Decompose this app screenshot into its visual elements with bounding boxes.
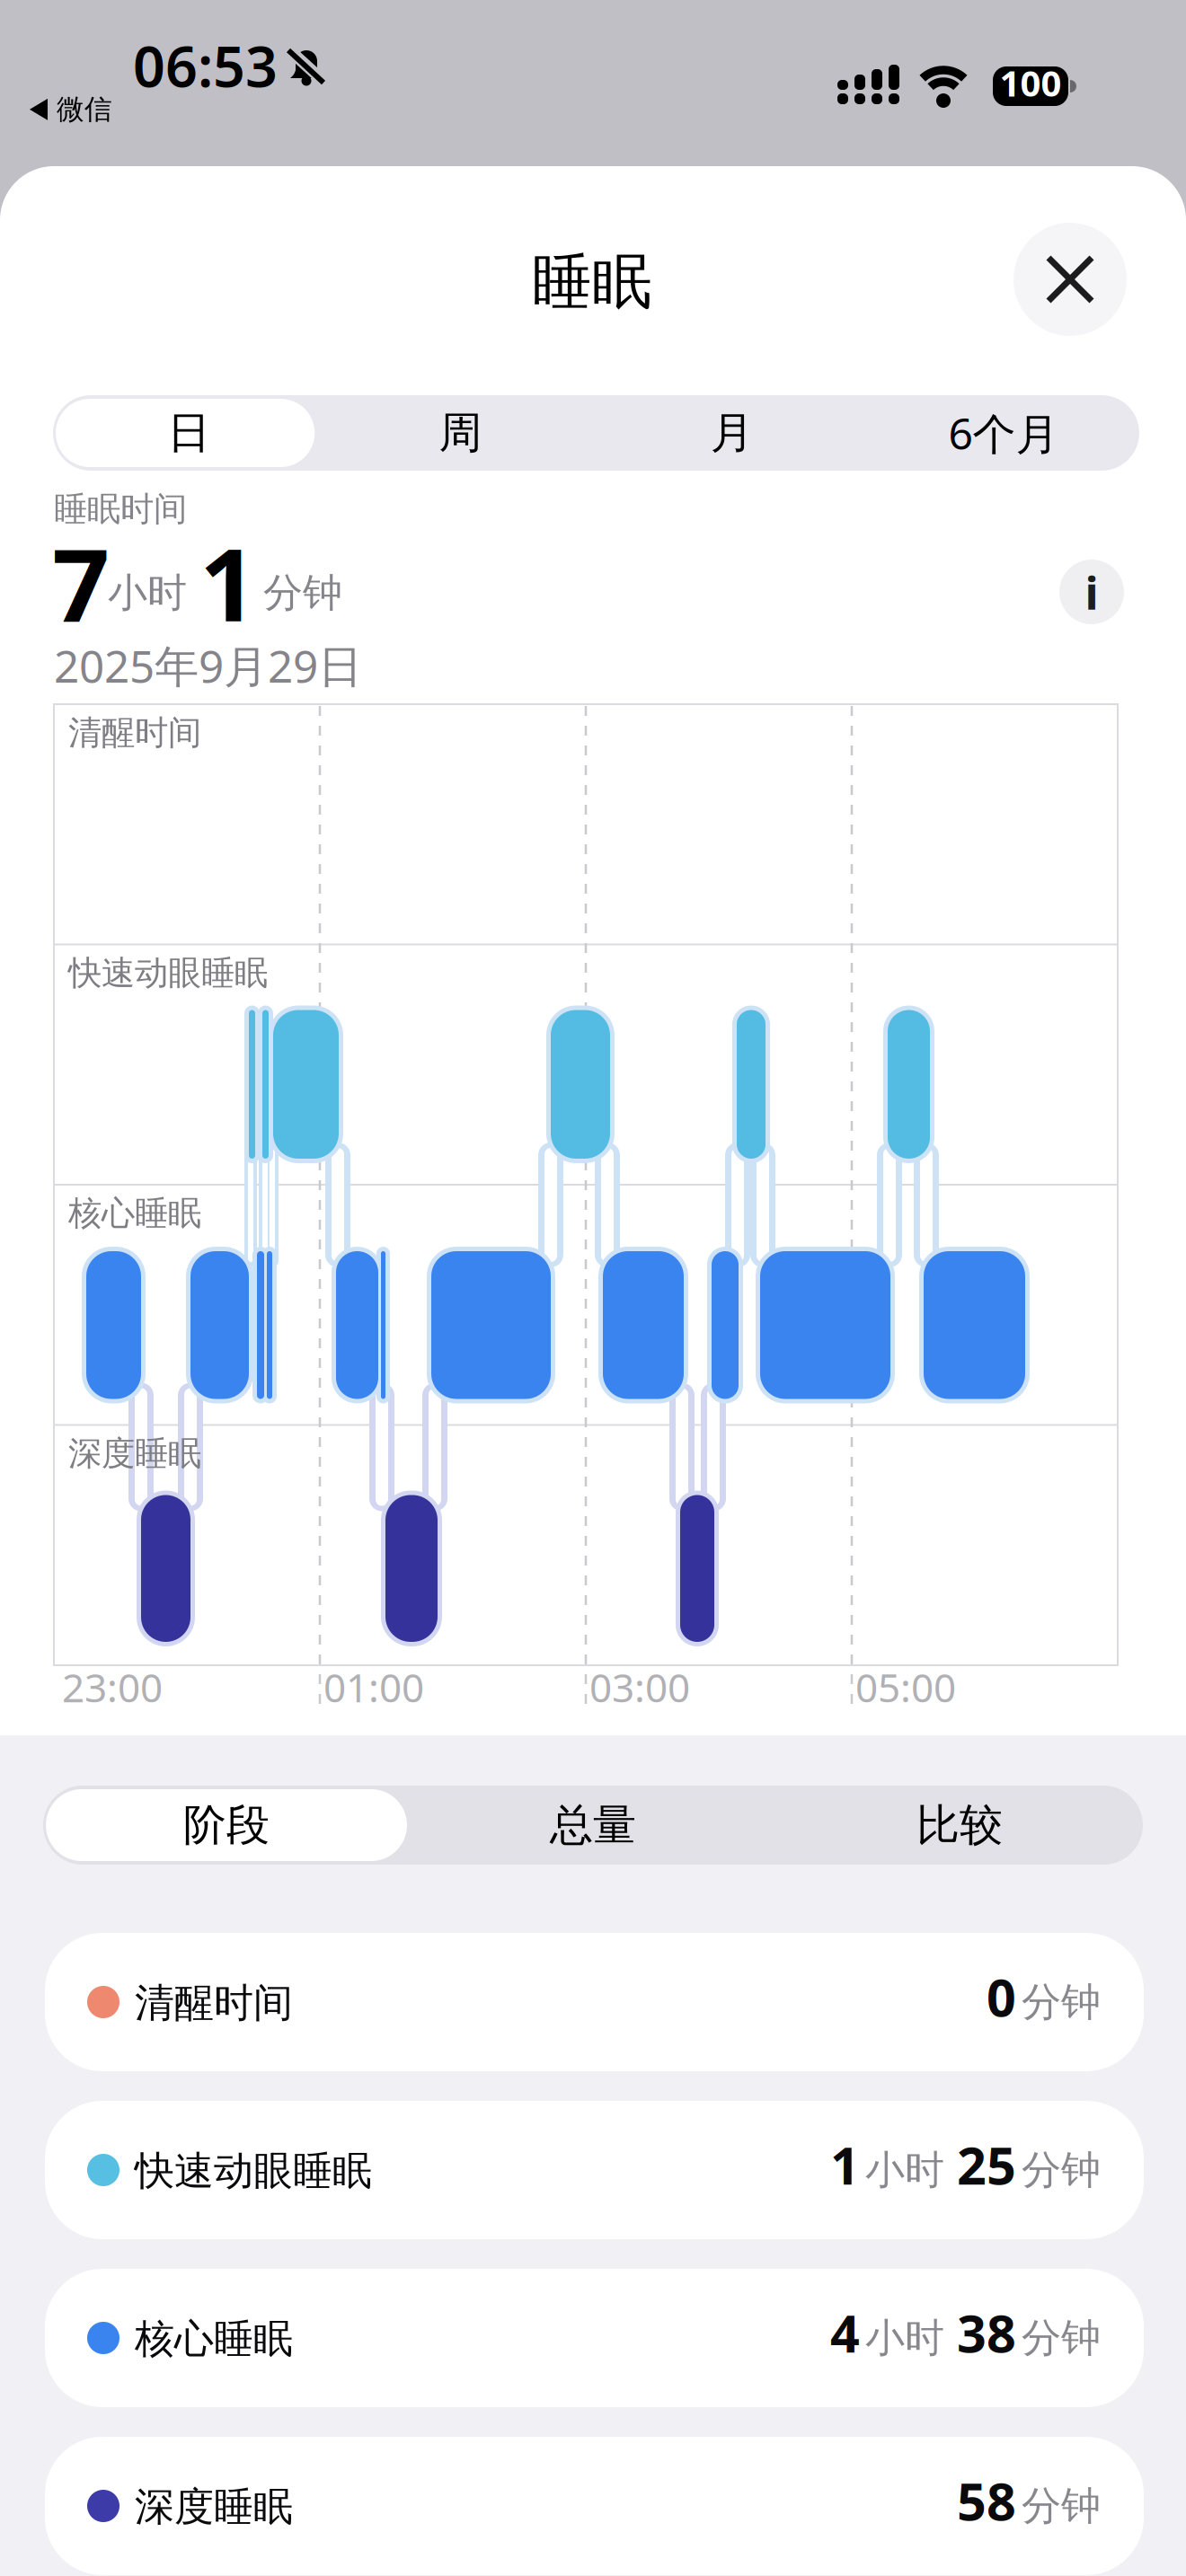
staticText: 阶段 (183, 1799, 270, 1852)
staticText: 分钟 (1022, 2314, 1101, 2362)
button[interactable]: 比较 (776, 1786, 1143, 1865)
staticText: 核心睡眠 (135, 2315, 293, 2363)
staticText: 分钟 (1022, 2482, 1101, 2530)
staticText: 小时 (865, 2146, 944, 2194)
button[interactable]: 阶段 (43, 1786, 410, 1865)
button[interactable]: 6个月 (868, 395, 1139, 471)
staticText: 38 (957, 2298, 1016, 2367)
staticText: 分钟 (263, 569, 342, 617)
staticText: 快速动眼睡眠 (68, 953, 268, 994)
staticText: 日 (167, 406, 210, 459)
button[interactable]: 关闭 (1013, 223, 1127, 336)
staticText: 0 (987, 1962, 1016, 2031)
button[interactable]: 周 (325, 395, 596, 471)
staticText: 小时 (108, 569, 187, 617)
staticText: 1 (199, 516, 257, 649)
staticText: 06:53 (133, 28, 278, 103)
staticText: 05:00 (855, 1661, 956, 1713)
staticText: 58 (957, 2466, 1016, 2535)
staticText: 月 (710, 406, 753, 459)
staticText: 睡眠 (532, 245, 652, 319)
staticText: 睡眠时间 (54, 489, 187, 530)
staticText: 1 (830, 2130, 860, 2199)
staticText: 微信 (57, 93, 112, 126)
staticText: 小时 (865, 2314, 944, 2362)
button[interactable]: 总量 (410, 1786, 776, 1865)
staticText: 分钟 (1022, 2146, 1101, 2194)
button[interactable]: 月 (596, 395, 868, 471)
staticText: 深度睡眠 (135, 2483, 293, 2531)
staticText: 清醒时间 (135, 1979, 293, 2027)
button[interactable]: 信息 (1059, 560, 1124, 624)
staticText: i (1085, 562, 1098, 622)
staticText: 6个月 (948, 404, 1059, 461)
staticText: 总量 (550, 1799, 636, 1852)
staticText: 清醒时间 (68, 712, 201, 753)
staticText: 核心睡眠 (68, 1193, 201, 1234)
staticText: 25 (957, 2130, 1016, 2199)
staticText: 分钟 (1022, 1978, 1101, 2026)
staticText: 100 (1000, 59, 1062, 106)
staticText: 23:00 (62, 1661, 163, 1713)
staticText: 比较 (916, 1799, 1003, 1852)
staticText: 2025年9月29日 (54, 636, 362, 695)
button[interactable]: 日 (53, 395, 325, 471)
button[interactable]: 微信 (30, 93, 112, 126)
staticText: 深度睡眠 (68, 1433, 201, 1474)
staticText: 周 (439, 406, 482, 459)
staticText: 快速动眼睡眠 (135, 2147, 372, 2195)
staticText: 7 (52, 516, 110, 649)
staticText: 01:00 (323, 1661, 424, 1713)
staticText: 03:00 (589, 1661, 690, 1713)
staticText: 4 (830, 2298, 860, 2367)
